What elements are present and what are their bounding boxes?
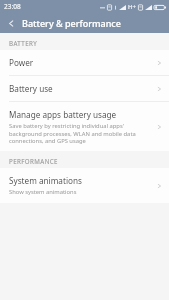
button[interactable]: Manage apps battery usage bbox=[0, 102, 169, 151]
staticText: BATTERY bbox=[9, 39, 38, 47]
staticText: Battery use bbox=[9, 83, 53, 94]
staticText: Save battery by restricting individual a… bbox=[9, 122, 153, 144]
staticText: System animations bbox=[9, 175, 82, 186]
staticText: 23:08 bbox=[4, 2, 21, 11]
staticText: Power bbox=[9, 57, 34, 68]
staticText: H+ bbox=[128, 3, 136, 11]
staticText: Battery & performance bbox=[22, 17, 121, 29]
button[interactable]: System animations bbox=[0, 168, 169, 203]
button[interactable]: Power bbox=[0, 50, 169, 75]
staticText: Manage apps battery usage bbox=[9, 109, 117, 120]
staticText: PERFORMANCE bbox=[9, 157, 58, 165]
staticText: Show system animations bbox=[9, 188, 77, 196]
button[interactable]: Back bbox=[0, 13, 22, 33]
button[interactable]: Battery use bbox=[0, 76, 169, 101]
